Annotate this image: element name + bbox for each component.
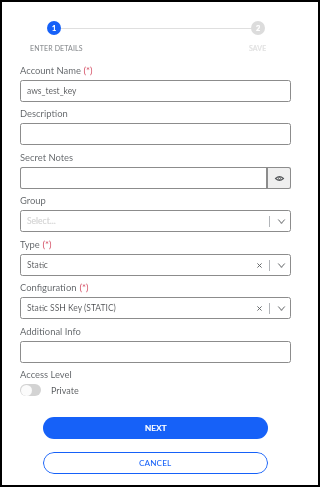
- staticText: 1: [52, 24, 57, 33]
- button[interactable]: [20, 341, 291, 363]
- staticText: Static SSH Key (STATIC): [27, 303, 116, 313]
- staticText: CANCEL: [139, 458, 172, 468]
- button[interactable]: Static: [20, 254, 291, 276]
- staticText: Configuration: [20, 282, 77, 293]
- staticText: Group: [20, 195, 46, 206]
- button[interactable]: Static SSH Key (STATIC): [20, 297, 291, 319]
- button[interactable]: [20, 123, 291, 145]
- button[interactable]: Show secret notes: [267, 167, 291, 189]
- staticText: Type: [20, 239, 40, 250]
- button[interactable]: [20, 167, 267, 189]
- staticText: Static: [27, 260, 48, 270]
- button[interactable]: Select...: [20, 210, 291, 232]
- staticText: Secret Notes: [20, 152, 74, 163]
- staticText: 2: [256, 24, 261, 33]
- staticText: (*): [81, 65, 93, 76]
- staticText: SAVE: [249, 44, 267, 52]
- button[interactable]: aws_test_key: [20, 80, 291, 102]
- staticText: (*): [77, 282, 89, 293]
- button[interactable]: 1: [47, 21, 61, 35]
- button[interactable]: 2: [251, 21, 265, 35]
- staticText: Select...: [27, 216, 56, 226]
- staticText: (*): [40, 239, 52, 250]
- button[interactable]: CANCEL: [43, 452, 268, 474]
- staticText: NEXT: [145, 423, 167, 433]
- staticText: aws_test_key: [27, 86, 77, 96]
- staticText: Private: [51, 385, 79, 396]
- staticText: Account Name: [20, 65, 81, 76]
- button[interactable]: NEXT: [43, 417, 268, 439]
- staticText: ENTER DETAILS: [30, 44, 83, 52]
- staticText: Access Level: [20, 369, 72, 380]
- staticText: Additional Info: [20, 326, 81, 337]
- staticText: Description: [20, 108, 68, 119]
- button[interactable]: Access level toggle: [20, 384, 41, 396]
